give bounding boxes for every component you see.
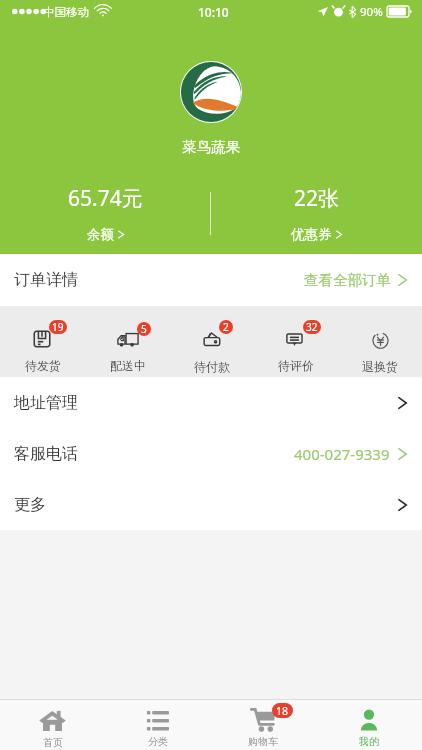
button[interactable]: 2 bbox=[170, 310, 254, 374]
other: Profile bbox=[358, 709, 380, 731]
staticText: 退换货 bbox=[362, 359, 398, 374]
button[interactable]: Profile bbox=[316, 699, 422, 750]
other: Categories bbox=[146, 710, 169, 730]
staticText: 90% bbox=[360, 4, 383, 20]
staticText: 22张 bbox=[294, 184, 340, 213]
staticText: 优惠券 bbox=[291, 226, 332, 243]
staticText: 32 bbox=[306, 320, 318, 334]
staticText: 订单详情 bbox=[14, 270, 78, 290]
staticText: 10:10 bbox=[198, 4, 229, 20]
button[interactable]: 22张 bbox=[211, 184, 422, 243]
button[interactable]: Home bbox=[0, 699, 105, 750]
button[interactable]: 65.74元 bbox=[0, 184, 210, 243]
staticText: 分类 bbox=[148, 735, 168, 748]
staticText: 5 bbox=[141, 322, 147, 336]
button[interactable]: 地址管理 bbox=[0, 377, 422, 428]
other: Cart bbox=[250, 708, 276, 732]
staticText: 2 bbox=[223, 320, 229, 334]
button[interactable]: 订单详情 bbox=[0, 254, 422, 306]
staticText: 18 bbox=[276, 704, 289, 718]
staticText: 购物车 bbox=[248, 735, 278, 748]
button[interactable]: 退换货 bbox=[338, 310, 422, 374]
button[interactable]: 客服电话 bbox=[0, 428, 422, 479]
staticText: 65.74元 bbox=[68, 184, 143, 213]
staticText: 客服电话 bbox=[14, 444, 78, 464]
staticText: 待付款 bbox=[194, 359, 230, 374]
staticText: 我的 bbox=[359, 735, 379, 748]
button[interactable]: 更多 bbox=[0, 479, 422, 530]
staticText: 余额 bbox=[87, 226, 114, 243]
staticText: 菜鸟蔬果 bbox=[182, 138, 240, 156]
staticText: 400-027-9339 bbox=[294, 444, 390, 464]
button[interactable]: 5 bbox=[85, 310, 170, 373]
button[interactable]: Categories bbox=[105, 699, 210, 750]
staticText: 待发货 bbox=[25, 358, 61, 373]
button[interactable]: 19 bbox=[0, 310, 85, 373]
staticText: 地址管理 bbox=[14, 393, 78, 413]
staticText: 待评价 bbox=[278, 358, 314, 373]
staticText: 19 bbox=[52, 320, 64, 334]
button[interactable]: Cart bbox=[210, 699, 316, 750]
staticText: 首页 bbox=[43, 736, 63, 749]
other: Home bbox=[39, 710, 66, 731]
button[interactable]: 32 bbox=[254, 310, 338, 373]
staticText: 配送中 bbox=[110, 358, 146, 373]
staticText: 中国移动 bbox=[43, 5, 89, 19]
staticText: 更多 bbox=[14, 495, 46, 515]
staticText: 查看全部订单 bbox=[304, 271, 391, 289]
